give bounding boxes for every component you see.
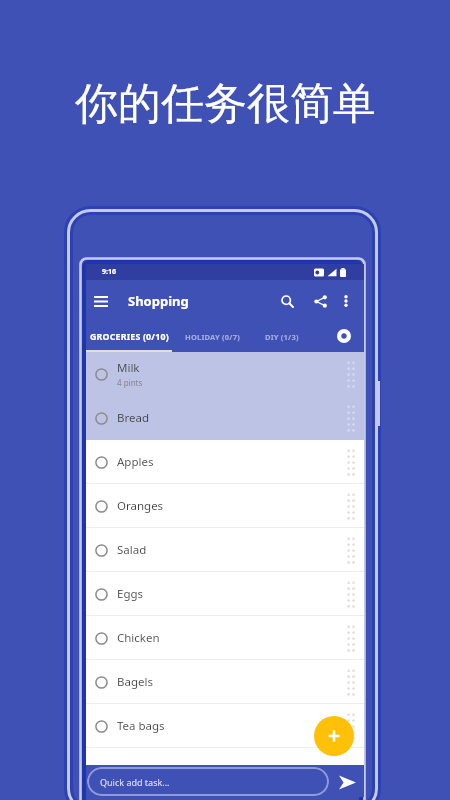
staticText: 9:16 [102,267,116,277]
button[interactable]: Bagels [86,660,364,704]
button[interactable]: Tea bags [86,704,364,748]
button[interactable]: Apples [86,440,364,484]
button[interactable]: Eggs [86,572,364,616]
button[interactable]: Oranges [86,484,364,528]
staticText: Bread [117,410,150,426]
staticText: Oranges [117,498,164,514]
button[interactable]: More options [335,290,357,312]
button[interactable]: Share [308,289,332,313]
staticText: Chicken [117,630,160,646]
staticText: Shopping [128,292,189,310]
button[interactable]: Search [275,289,299,313]
staticText: Eggs [117,586,144,602]
button[interactable]: Quick add task... [87,767,329,796]
staticText: Tea bags [117,718,165,734]
staticText: HOLIDAY (0/7) [185,332,240,342]
button[interactable]: HOLIDAY (0/7) [172,321,252,352]
button[interactable]: Add list [330,322,357,349]
staticText: 4 pints [117,377,143,388]
staticText: DIY (1/3) [265,332,299,342]
staticText: Apples [117,454,154,470]
button[interactable]: Milk [86,352,364,396]
staticText: Quick add task... [100,776,170,788]
button[interactable]: DIY (1/3) [252,321,311,352]
button[interactable]: GROCERIES (0/10) [86,321,172,352]
button[interactable]: Menu [90,290,112,312]
button[interactable]: Send [334,769,360,795]
button[interactable]: Bread [86,396,364,440]
staticText: Salad [117,542,147,558]
staticText: Milk [117,360,140,376]
staticText: 你的任务很简单 [75,77,376,131]
button[interactable]: Salad [86,528,364,572]
button[interactable]: Chicken [86,616,364,660]
staticText: Bagels [117,674,153,690]
staticText: GROCERIES (0/10) [90,331,169,343]
button[interactable]: Add task [314,716,354,756]
